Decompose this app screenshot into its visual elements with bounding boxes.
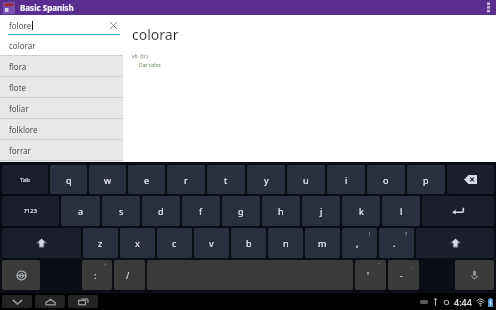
staticText: colorar	[132, 25, 179, 44]
staticText: '	[367, 269, 370, 281]
button[interactable]: m	[305, 228, 340, 258]
staticText: Tab	[20, 176, 30, 184]
staticText: Basic Spanish	[20, 2, 74, 13]
staticText: +	[104, 262, 107, 269]
button[interactable]: n	[268, 228, 303, 258]
button[interactable]: Voice input	[455, 260, 494, 290]
staticText: ,	[356, 237, 359, 249]
staticText: z	[98, 237, 103, 249]
button[interactable]: c	[157, 228, 192, 258]
button[interactable]: p	[407, 165, 445, 194]
staticText: w	[104, 174, 112, 186]
staticText: y	[264, 174, 269, 186]
staticText: p	[423, 174, 429, 186]
button[interactable]: flora	[0, 56, 123, 76]
button[interactable]: ,	[342, 228, 377, 258]
button[interactable]: h	[262, 196, 300, 226]
staticText: -	[400, 269, 403, 281]
staticText: k	[359, 205, 364, 217]
button[interactable]: Hide keyboard	[2, 295, 32, 308]
button[interactable]: j	[302, 196, 340, 226]
staticText: c	[172, 237, 177, 249]
staticText: /	[126, 269, 130, 281]
staticText: o	[383, 174, 389, 186]
button[interactable]: -	[388, 260, 419, 290]
staticText: !	[369, 231, 371, 238]
staticText: t	[224, 174, 228, 186]
button[interactable]: .	[379, 228, 414, 258]
button[interactable]: Backspace	[447, 165, 494, 194]
button[interactable]: foliar	[0, 98, 123, 118]
button[interactable]: e	[128, 165, 165, 194]
staticText: .	[393, 237, 396, 249]
button[interactable]: q	[50, 165, 87, 194]
staticText: s	[119, 205, 124, 217]
button[interactable]: Recent apps	[68, 295, 98, 308]
staticText: "	[378, 262, 381, 269]
staticText: j	[320, 205, 323, 217]
button[interactable]: g	[222, 196, 260, 226]
staticText: ?	[405, 231, 408, 238]
button[interactable]: y	[247, 165, 285, 194]
staticText: g	[238, 205, 244, 217]
staticText: u	[303, 174, 309, 186]
staticText: folklore	[9, 124, 38, 135]
button[interactable]: d	[142, 196, 180, 226]
staticText: ?123	[24, 207, 37, 215]
button[interactable]: x	[120, 228, 155, 258]
button[interactable]: /	[114, 260, 145, 290]
staticText: v	[209, 237, 214, 249]
button[interactable]: folklore	[0, 119, 123, 139]
button[interactable]: More options	[480, 0, 496, 15]
button[interactable]: Enter	[422, 196, 494, 226]
staticText: flora	[9, 61, 27, 72]
button[interactable]: v	[194, 228, 229, 258]
button[interactable]: r	[167, 165, 205, 194]
button[interactable]: forrar	[0, 140, 123, 160]
button[interactable]: k	[342, 196, 380, 226]
staticText: foliar	[9, 103, 29, 114]
button[interactable]: Shift	[416, 228, 494, 258]
staticText: :	[94, 269, 97, 281]
button[interactable]: z	[83, 228, 118, 258]
staticText: b	[246, 237, 252, 249]
button[interactable]: flote	[0, 77, 123, 97]
button[interactable]: a	[61, 196, 100, 226]
button[interactable]: colorar	[0, 35, 123, 55]
button[interactable]: i	[327, 165, 365, 194]
staticText: f	[199, 205, 203, 217]
button[interactable]: l	[382, 196, 420, 226]
button[interactable]: :	[82, 260, 112, 290]
button[interactable]: t	[207, 165, 245, 194]
staticText: l	[400, 205, 403, 217]
staticText: m	[318, 237, 327, 249]
staticText: colorar	[9, 40, 36, 51]
button[interactable]: App icon	[3, 2, 15, 14]
staticText: q	[66, 174, 72, 186]
staticText: vb. (tr.)	[132, 53, 148, 60]
staticText: 4:44	[454, 296, 472, 308]
button[interactable]: Clear search	[107, 19, 119, 31]
button[interactable]: Tab	[2, 165, 48, 194]
staticText: a	[78, 205, 84, 217]
button[interactable]: Change language	[2, 260, 40, 290]
staticText: n	[283, 237, 289, 249]
staticText: Dar color.	[139, 62, 162, 69]
staticText: forrar	[9, 145, 31, 156]
button[interactable]: f	[182, 196, 220, 226]
button[interactable]: folore	[0, 15, 123, 35]
button[interactable]: w	[89, 165, 126, 194]
staticText: _	[411, 262, 414, 269]
button[interactable]: b	[231, 228, 266, 258]
button[interactable]: o	[367, 165, 405, 194]
button[interactable]: s	[102, 196, 140, 226]
staticText: x	[135, 237, 140, 249]
button[interactable]: u	[287, 165, 325, 194]
button[interactable]: Shift	[2, 228, 81, 258]
button[interactable]: '	[355, 260, 386, 290]
staticText: i	[345, 174, 348, 186]
button[interactable]: ?123	[2, 196, 59, 226]
button[interactable]: Home	[35, 295, 65, 308]
staticText: d	[158, 205, 164, 217]
